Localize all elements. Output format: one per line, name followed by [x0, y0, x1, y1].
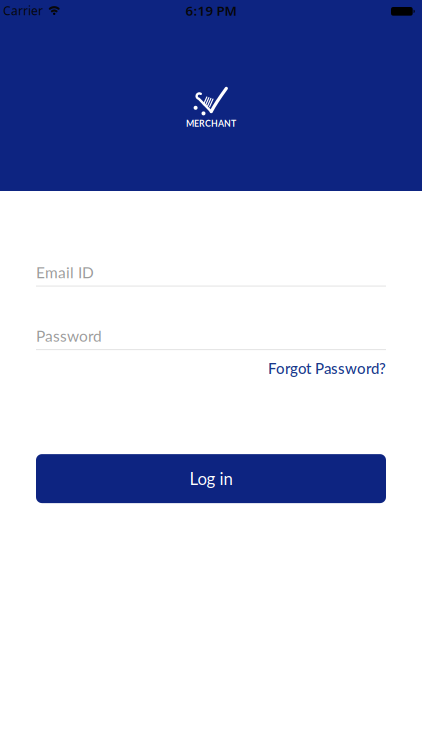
staticText: 6:19 PM	[185, 2, 236, 19]
staticText: Email ID	[36, 263, 94, 282]
staticText: Password	[36, 327, 102, 345]
button[interactable]: Password	[36, 327, 386, 350]
staticText: MERCHANT	[186, 118, 236, 129]
button[interactable]: Forgot Password?	[268, 359, 386, 377]
button[interactable]: Log in	[36, 454, 386, 503]
staticText: Log in	[189, 468, 232, 489]
button[interactable]: Email ID	[36, 263, 386, 287]
staticText: Forgot Password?	[268, 359, 386, 377]
staticText: Carrier	[3, 2, 43, 18]
